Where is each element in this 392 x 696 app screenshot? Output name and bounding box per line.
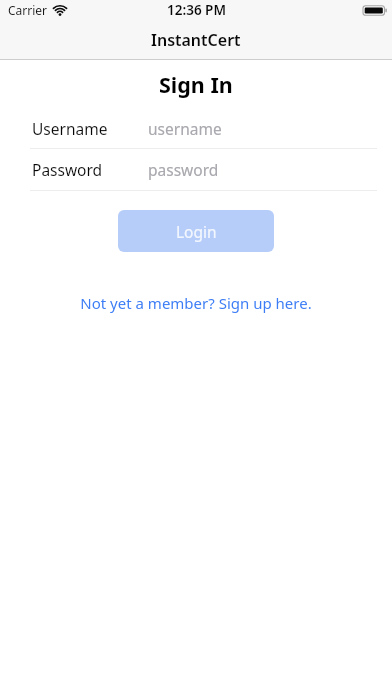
button[interactable]: Not yet a member? Sign up here. <box>80 293 312 313</box>
staticText: 12:36 PM <box>167 1 226 19</box>
staticText: InstantCert <box>151 29 241 51</box>
staticText: Sign In <box>159 70 233 99</box>
staticText: Password <box>32 159 103 180</box>
staticText: Not yet a member? Sign up here. <box>80 293 312 313</box>
button[interactable]: Login <box>118 210 274 252</box>
staticText: Login <box>176 221 217 242</box>
staticText: password <box>148 159 219 180</box>
staticText: Username <box>32 118 108 139</box>
button[interactable]: Password <box>0 149 392 190</box>
staticText: username <box>148 118 222 139</box>
button[interactable]: Username <box>0 108 392 148</box>
staticText: Carrier <box>8 2 48 18</box>
